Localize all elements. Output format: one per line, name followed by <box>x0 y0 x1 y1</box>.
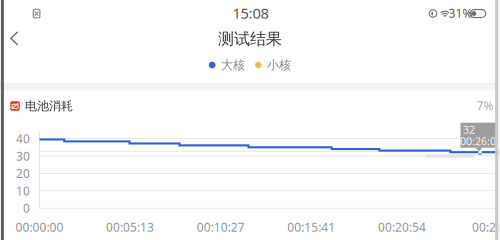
staticText: 测试结果 <box>218 29 282 49</box>
staticText: 31% <box>448 5 472 21</box>
staticText: 7% <box>476 98 493 113</box>
button[interactable]: Back <box>0 22 29 54</box>
staticText: 32 <box>463 122 475 137</box>
staticText: 00:15:41 <box>287 219 335 235</box>
staticText: 20 <box>16 165 30 181</box>
staticText: 00:26:0 <box>472 219 500 235</box>
staticText: 30 <box>16 148 30 164</box>
staticText: 00:00:00 <box>15 219 63 235</box>
staticText: 00:20:54 <box>378 219 426 235</box>
staticText: 大核 <box>221 58 245 72</box>
staticText: 小核 <box>267 58 291 72</box>
staticText: 15:08 <box>232 3 268 23</box>
staticText: 0 <box>23 200 30 216</box>
staticText: 00:05:13 <box>106 219 154 235</box>
staticText: 10 <box>16 183 30 199</box>
staticText: 00:26:08 <box>460 134 500 148</box>
staticText: 40 <box>16 131 30 146</box>
staticText: 电池消耗 <box>25 99 73 113</box>
staticText: 00:10:27 <box>197 219 245 235</box>
